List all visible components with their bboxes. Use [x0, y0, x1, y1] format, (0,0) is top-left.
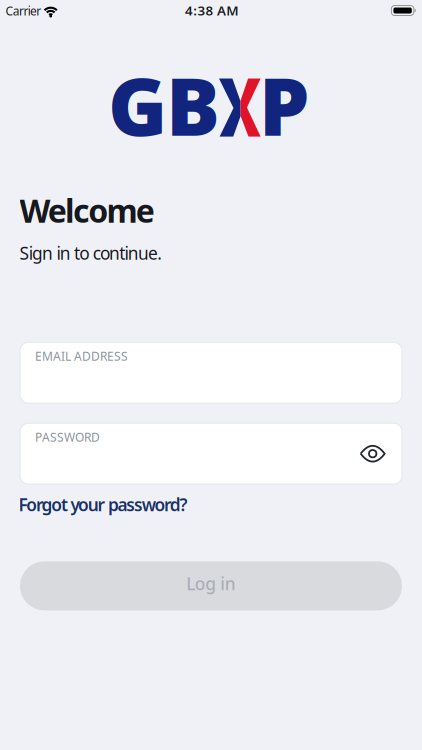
button[interactable]: Log in — [20, 561, 402, 610]
staticText: Carrier — [5, 3, 41, 19]
staticText: GB — [108, 51, 220, 158]
staticText: P — [259, 51, 310, 158]
button[interactable]: EMAIL ADDRESS — [20, 342, 402, 403]
staticText: PASSWORD — [35, 429, 100, 445]
staticText: Log in — [186, 572, 236, 595]
button[interactable]: Forgot your password? — [18, 493, 187, 516]
staticText: 4:38 AM — [185, 1, 238, 19]
button[interactable]: Show password — [351, 432, 395, 476]
staticText: EMAIL ADDRESS — [35, 348, 128, 364]
staticText: Forgot your password? — [18, 493, 187, 516]
staticText: Sign in to continue. — [19, 241, 162, 264]
staticText: Welcome — [19, 189, 155, 231]
button[interactable]: PASSWORD — [20, 423, 402, 484]
